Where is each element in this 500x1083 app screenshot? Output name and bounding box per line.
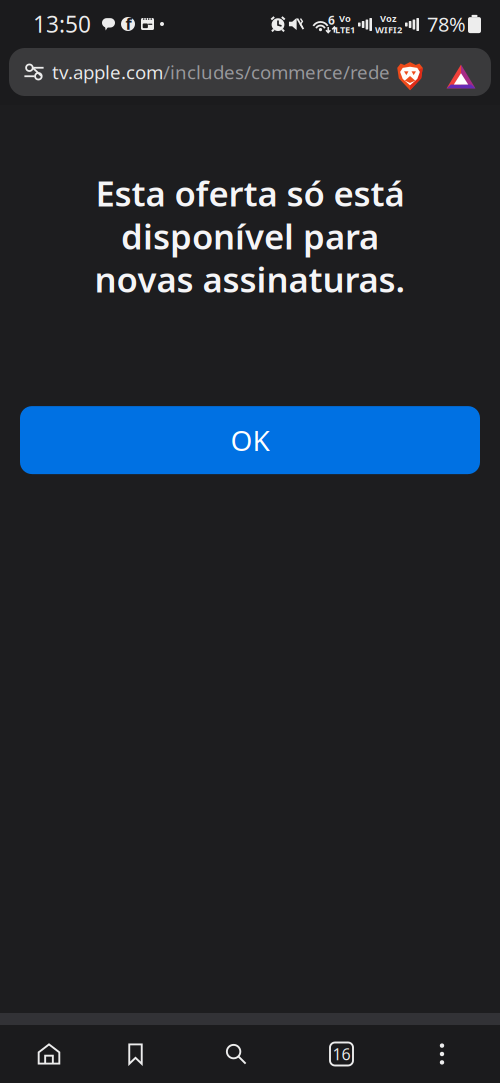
- staticText: disponível para: [121, 213, 379, 259]
- button[interactable]: Brave Rewards: [428, 48, 484, 96]
- staticText: OK: [230, 421, 269, 459]
- staticText: Esta oferta só está: [95, 170, 404, 216]
- button[interactable]: Brave Shields: [16, 48, 52, 96]
- button[interactable]: Home: [10, 1027, 88, 1081]
- button[interactable]: Tabs, 16 open: [289, 1027, 394, 1081]
- staticText: /includes/commerce/rede: [163, 60, 390, 84]
- button[interactable]: Search: [183, 1027, 289, 1081]
- staticText: Voz: [380, 12, 397, 24]
- button[interactable]: tv.apple.com: [52, 48, 392, 96]
- staticText: 6: [328, 12, 335, 28]
- button[interactable]: OK: [20, 406, 480, 474]
- staticText: WIFI2: [375, 23, 402, 36]
- staticText: tv.apple.com: [52, 60, 163, 84]
- staticText: 78%: [427, 11, 466, 37]
- button[interactable]: Brave Shields status: [392, 48, 428, 96]
- staticText: f: [125, 13, 131, 34]
- staticText: 13:50: [33, 9, 91, 39]
- staticText: novas assinaturas.: [94, 256, 405, 302]
- staticText: 16: [332, 1043, 350, 1065]
- button[interactable]: Bookmarks: [88, 1027, 183, 1081]
- staticText: Vo: [339, 12, 351, 24]
- staticText: LTE1: [335, 23, 355, 36]
- button[interactable]: More options: [394, 1027, 490, 1081]
